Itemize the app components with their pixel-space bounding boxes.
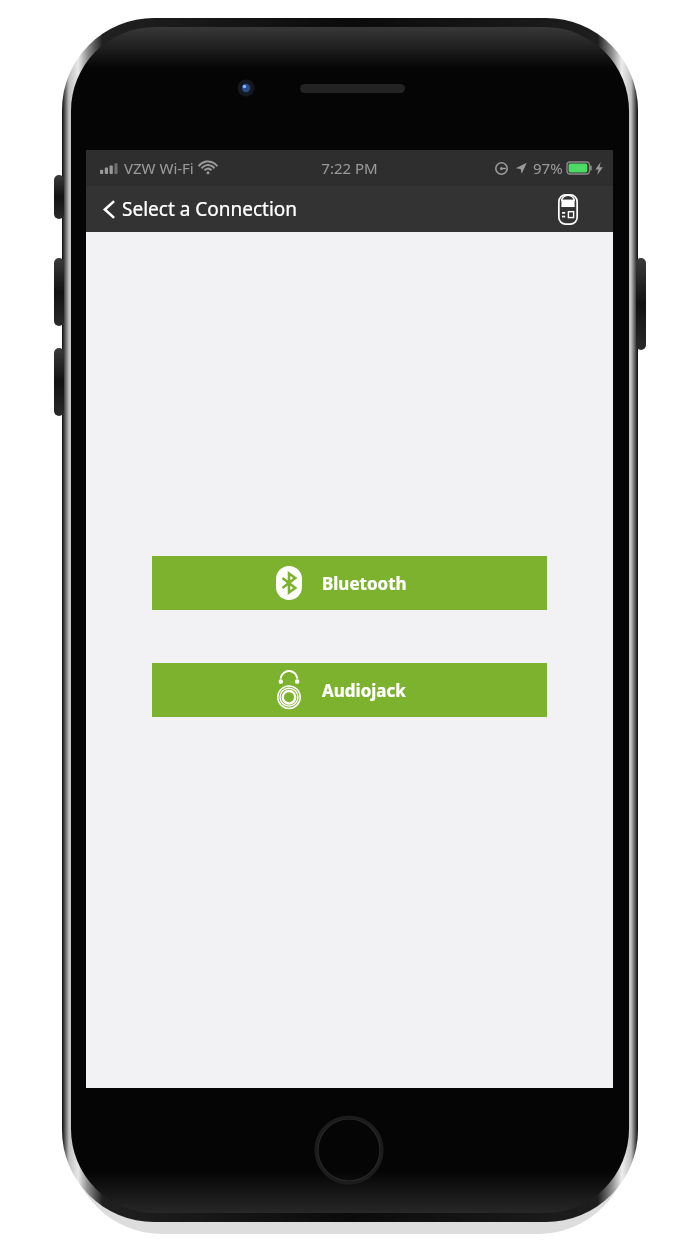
staticText: 97%: [533, 158, 563, 178]
button[interactable]: Select a Connection: [86, 190, 308, 228]
staticText: VZW Wi-Fi: [124, 158, 194, 178]
staticText: 7:22 PM: [321, 158, 378, 178]
staticText: Select a Connection: [122, 196, 298, 222]
button[interactable]: Device remote: [551, 192, 585, 226]
button[interactable]: Bluetooth: [152, 556, 547, 610]
button[interactable]: Audiojack: [152, 663, 547, 717]
staticText: Audiojack: [322, 679, 406, 702]
staticText: Bluetooth: [322, 572, 407, 595]
